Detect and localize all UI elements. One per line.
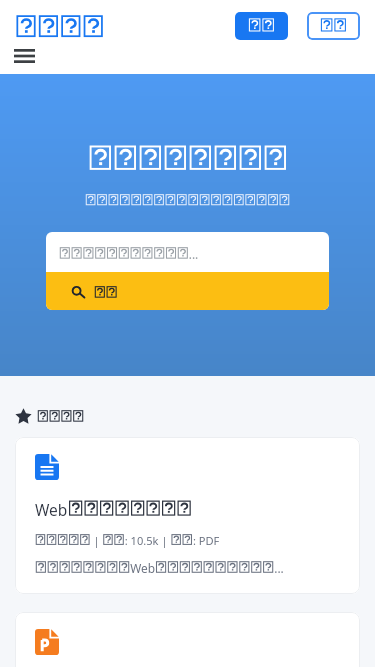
button[interactable] (15, 612, 360, 667)
button[interactable] (235, 12, 288, 40)
button[interactable] (307, 12, 360, 40)
button[interactable] (46, 272, 329, 310)
button[interactable]: Menu (8, 44, 40, 68)
button[interactable] (15, 437, 360, 594)
